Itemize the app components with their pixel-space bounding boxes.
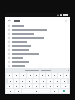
button[interactable]: a [8,79,13,83]
button[interactable] [5,40,70,44]
button[interactable]: Backspace [61,84,69,88]
button[interactable]: t [34,73,39,78]
button[interactable]: y [40,73,45,78]
button[interactable] [5,24,70,28]
button[interactable]: Period [51,89,58,93]
button[interactable]: m [54,84,60,88]
button[interactable]: n [47,84,53,88]
button[interactable]: v [33,84,39,88]
button[interactable]: r [27,73,33,78]
button[interactable]: b [40,84,46,88]
button[interactable] [5,52,70,56]
button[interactable]: Voice search [64,19,68,23]
button[interactable]: s [14,79,19,83]
button[interactable]: e [20,73,26,78]
button[interactable]: x [20,84,25,88]
button[interactable]: w [13,73,19,78]
button[interactable]: Shift [6,84,13,88]
button[interactable]: z [14,84,19,88]
button[interactable] [5,44,70,48]
button[interactable]: d [20,79,25,83]
button[interactable] [5,32,70,36]
button[interactable]: q [6,73,12,78]
button[interactable]: o [58,73,63,78]
button[interactable]: g [33,79,39,83]
button[interactable] [5,60,70,64]
button[interactable]: Search [59,89,69,93]
button[interactable]: u [46,73,51,78]
button[interactable] [5,64,70,68]
button[interactable]: Back [7,18,12,23]
button[interactable]: Comma [15,89,21,93]
button[interactable]: k [54,79,60,83]
button[interactable]: f [26,79,32,83]
button[interactable]: j [47,79,53,83]
button[interactable]: c [26,84,32,88]
button[interactable]: h [40,79,46,83]
button[interactable]: p [64,73,69,78]
button[interactable] [5,48,70,52]
button[interactable]: l [61,79,67,83]
button[interactable] [5,36,70,40]
button[interactable] [5,56,70,60]
button[interactable]: Space [22,89,50,93]
button[interactable]: Symbols [6,89,14,93]
button[interactable]: i [52,73,57,78]
button[interactable] [5,28,70,32]
